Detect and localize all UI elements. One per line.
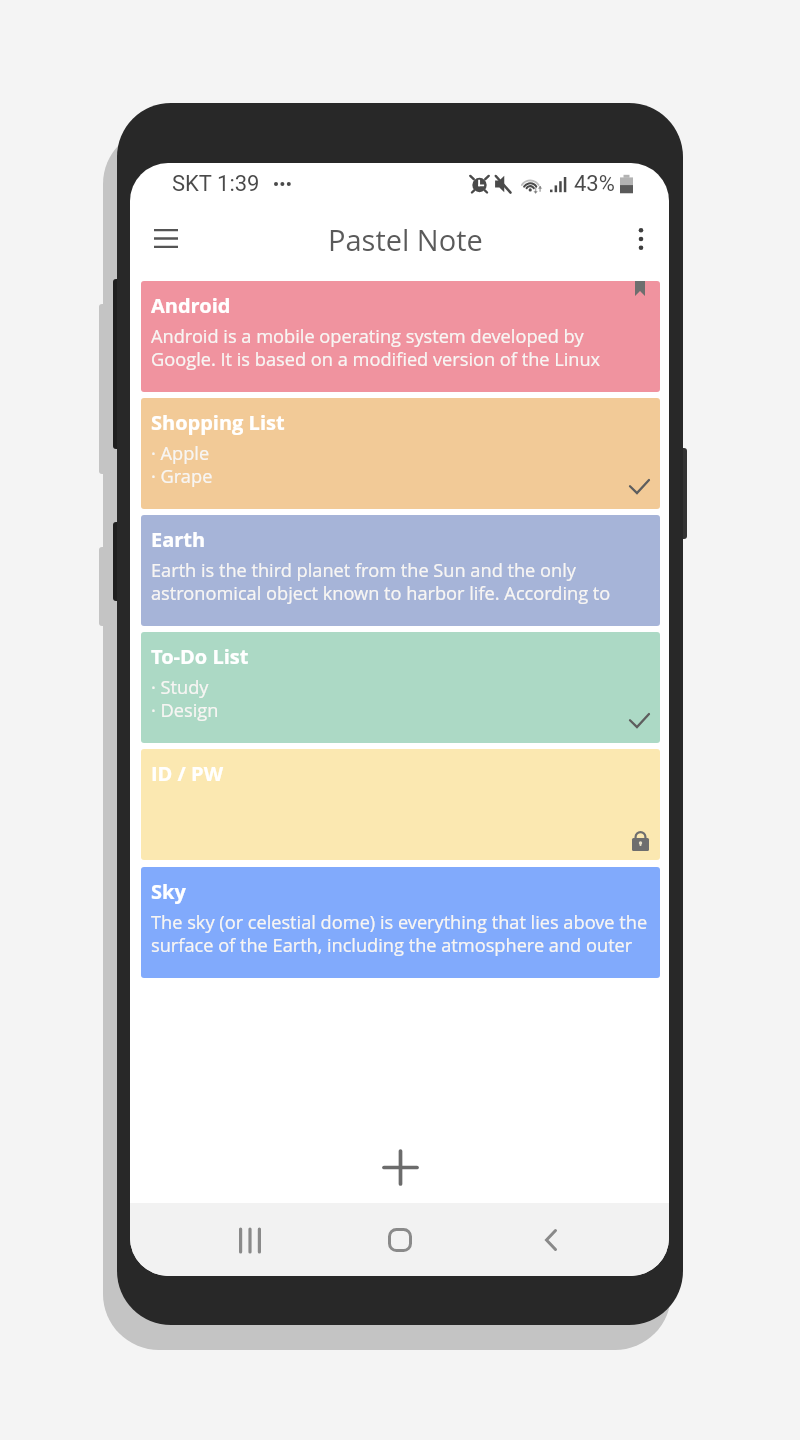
button[interactable]: Menu — [140, 212, 192, 264]
button[interactable]: ID / PW — [141, 749, 660, 860]
staticText: 43% — [574, 171, 615, 197]
button[interactable]: Earth — [141, 515, 660, 626]
staticText: Android — [151, 292, 231, 319]
button[interactable]: Home — [374, 1214, 426, 1266]
staticText: Pastel Note — [328, 220, 483, 259]
staticText: Shopping List — [151, 409, 285, 436]
button[interactable]: To-Do List — [141, 632, 660, 743]
staticText: Earth — [151, 526, 206, 553]
button[interactable]: Back — [525, 1214, 577, 1266]
staticText: Sky — [151, 878, 186, 905]
staticText: Android is a mobile operating system dev… — [151, 324, 601, 371]
staticText: ID / PW — [151, 760, 223, 787]
staticText: · Study · Design — [151, 675, 219, 722]
staticText: SKT 1:39 — [172, 171, 260, 197]
staticText: The sky (or celestial dome) is everythin… — [151, 910, 648, 957]
button[interactable]: More options — [615, 213, 667, 265]
staticText: · Apple · Grape — [151, 441, 213, 488]
button[interactable]: Shopping List — [141, 398, 660, 509]
button[interactable]: Recents — [224, 1214, 276, 1266]
button[interactable]: Sky — [141, 867, 660, 978]
staticText: Earth is the third planet from the Sun a… — [151, 558, 611, 605]
staticText: To-Do List — [151, 643, 249, 670]
button[interactable]: Add note — [373, 1140, 427, 1194]
button[interactable]: Android — [141, 281, 660, 392]
